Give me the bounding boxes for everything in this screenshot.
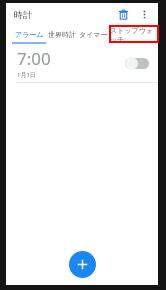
button[interactable]: Delete	[113, 4, 133, 24]
button[interactable]: More options	[135, 5, 153, 23]
button[interactable]: タイマー	[78, 25, 108, 43]
staticText: アラーム	[15, 30, 44, 39]
staticText: タイマー	[79, 30, 108, 39]
staticText: ストップウォッチ	[110, 26, 158, 42]
button[interactable]: アラーム	[12, 25, 46, 43]
button[interactable]: Toggle alarm	[125, 55, 149, 71]
button[interactable]: Add alarm	[69, 251, 96, 278]
staticText: 世界時計	[48, 30, 76, 39]
button[interactable]: 世界時計	[46, 25, 78, 43]
staticText: 時計	[14, 9, 32, 20]
staticText: 7:00	[17, 47, 51, 70]
staticText: 1月1日	[17, 71, 36, 79]
button[interactable]: 7:00	[6, 44, 158, 82]
button[interactable]: ストップウォッチ	[110, 26, 158, 42]
